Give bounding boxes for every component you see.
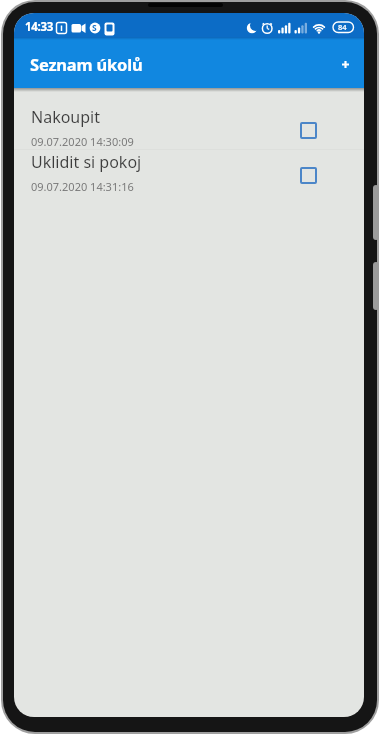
staticText: Nakoupit xyxy=(31,106,100,128)
button[interactable] xyxy=(333,52,357,76)
button[interactable] xyxy=(300,122,317,139)
button[interactable]: Nakoupit xyxy=(14,105,364,149)
staticText: 09.07.2020 14:31:16 xyxy=(31,179,134,194)
staticText: 14:33 xyxy=(25,19,54,35)
staticText: Seznam úkolů xyxy=(30,53,143,75)
button[interactable]: Uklidit si pokoj xyxy=(14,150,364,194)
staticText: Uklidit si pokoj xyxy=(31,151,142,173)
staticText: S xyxy=(92,22,97,34)
staticText: 09.07.2020 14:30:09 xyxy=(31,134,134,149)
staticText: 84 xyxy=(338,22,347,32)
button[interactable] xyxy=(300,167,317,184)
